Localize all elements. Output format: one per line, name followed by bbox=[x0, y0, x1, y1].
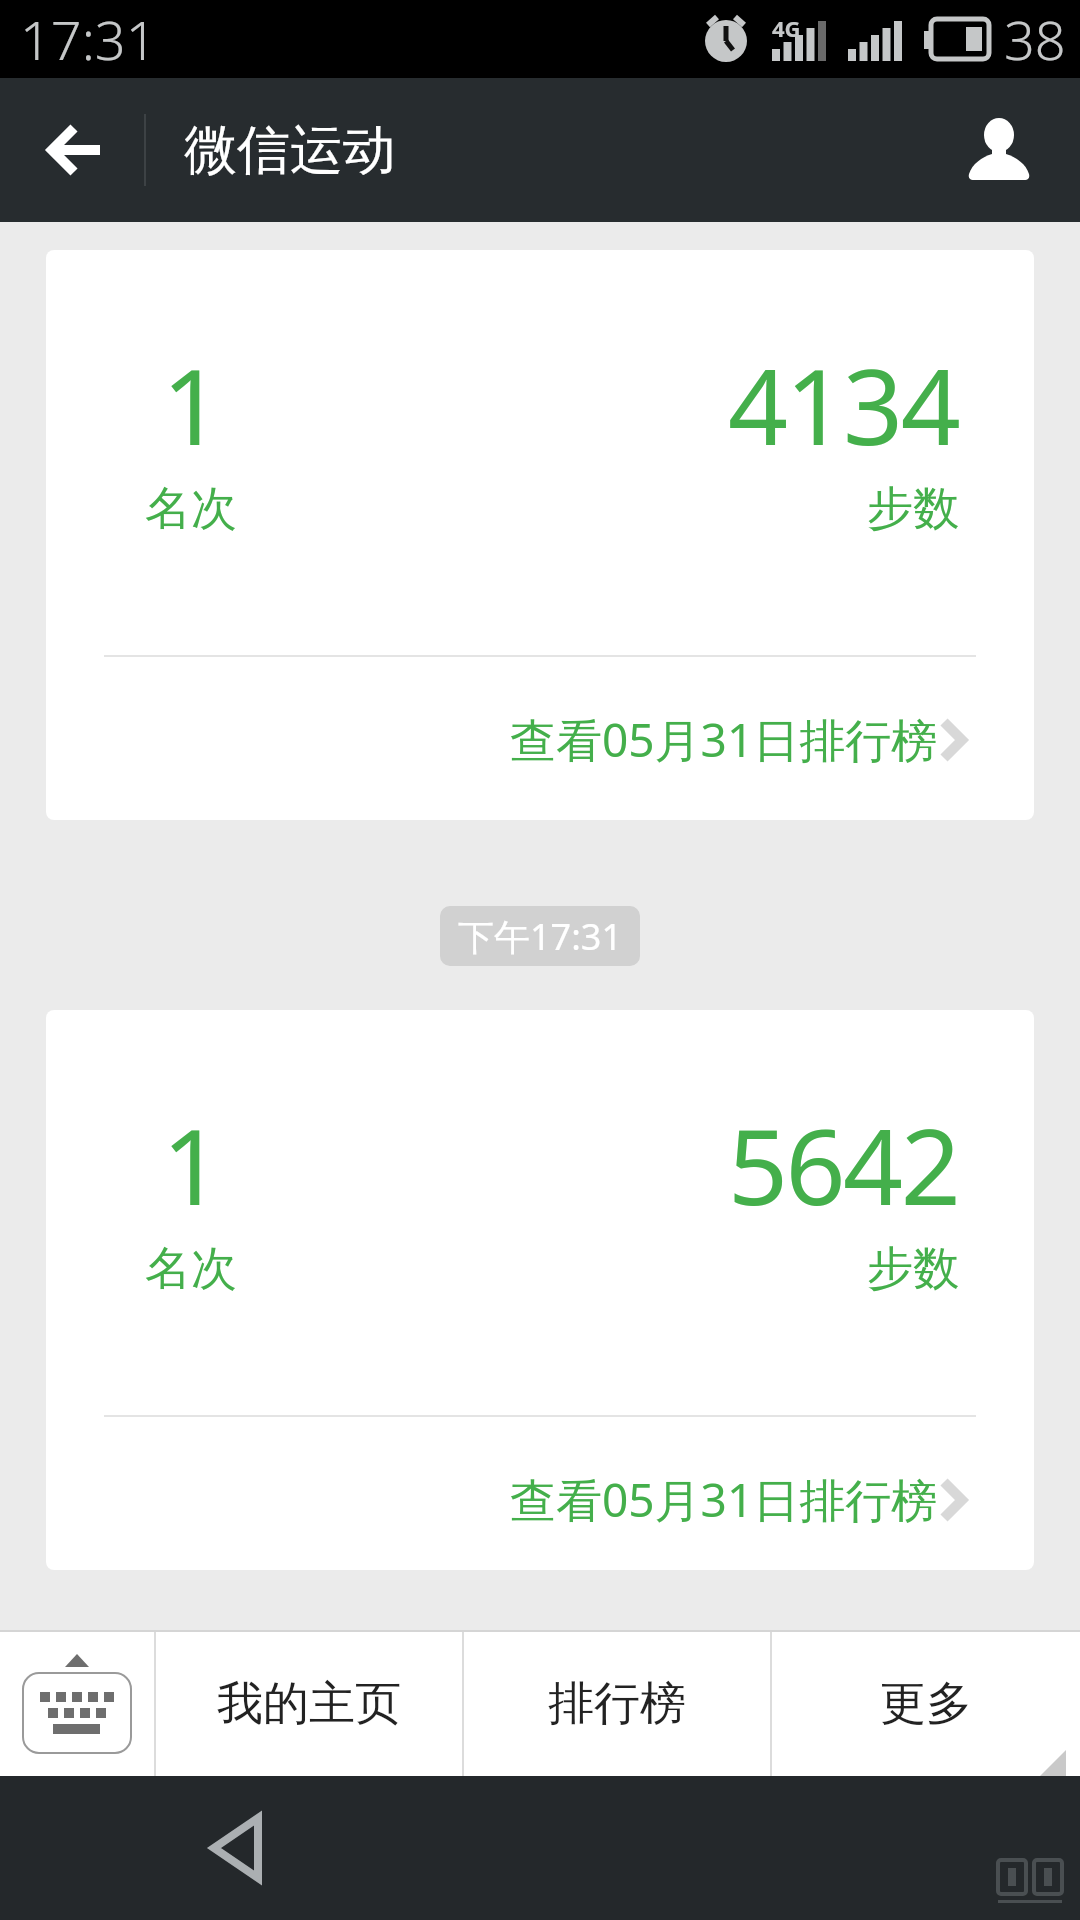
staticText: 查看05月31日排行榜 bbox=[510, 1468, 938, 1531]
button[interactable]: 查看05月31日排行榜 bbox=[510, 708, 970, 771]
staticText: 4G bbox=[772, 13, 801, 43]
staticText: 1 bbox=[162, 333, 220, 476]
staticText: 查看05月31日排行榜 bbox=[510, 708, 938, 771]
staticText: 下午17:31 bbox=[458, 912, 623, 961]
button[interactable]: 排行榜 bbox=[464, 1632, 770, 1776]
staticText: 排行榜 bbox=[548, 1675, 686, 1733]
button[interactable] bbox=[180, 1793, 290, 1903]
staticText: 38 bbox=[1004, 2, 1066, 76]
button[interactable] bbox=[36, 110, 116, 190]
staticText: 17:31 bbox=[20, 2, 157, 76]
staticText: 步数 bbox=[867, 480, 959, 538]
button[interactable] bbox=[954, 105, 1044, 195]
staticText: 1 bbox=[162, 1093, 220, 1236]
staticText: 4134 bbox=[728, 333, 959, 476]
button[interactable]: 查看05月31日排行榜 bbox=[510, 1468, 970, 1531]
staticText: 名次 bbox=[145, 1240, 237, 1298]
staticText: 更多 bbox=[880, 1675, 972, 1733]
staticText: 微信运动 bbox=[184, 117, 396, 184]
staticText: 5642 bbox=[728, 1093, 959, 1236]
staticText: 我的主页 bbox=[217, 1675, 401, 1733]
button[interactable] bbox=[0, 1632, 154, 1776]
button[interactable]: 更多 bbox=[772, 1632, 1080, 1776]
button[interactable]: 我的主页 bbox=[156, 1632, 462, 1776]
staticText: 步数 bbox=[867, 1240, 959, 1298]
staticText: 名次 bbox=[145, 480, 237, 538]
